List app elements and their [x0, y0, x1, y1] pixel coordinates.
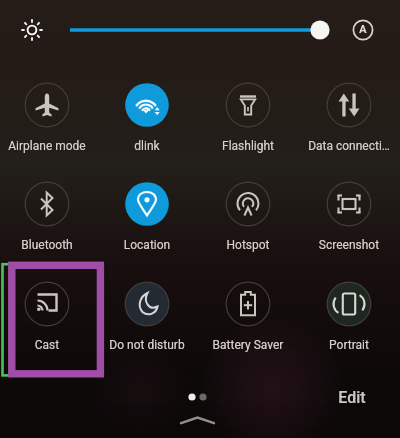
button[interactable]: Flashlight: [198, 79, 298, 161]
staticText: Edit: [322, 388, 382, 407]
button[interactable]: Screenshot: [299, 178, 399, 260]
button[interactable]: Battery Saver: [198, 278, 298, 360]
staticText: Portrait: [299, 338, 399, 352]
button[interactable]: Airplane mode: [0, 79, 97, 161]
button[interactable]: Hotspot: [198, 178, 298, 260]
button[interactable]: Page indicator: [182, 388, 214, 406]
staticText: Screenshot: [299, 238, 399, 252]
button[interactable]: Auto brightness: [346, 13, 380, 47]
button[interactable]: Brightness slider: [60, 14, 332, 46]
button[interactable]: Edit: [322, 382, 382, 412]
staticText: Flashlight: [198, 139, 298, 153]
staticText: Hotspot: [198, 238, 298, 252]
staticText: Bluetooth: [0, 238, 97, 252]
staticText: A: [346, 23, 380, 36]
staticText: Cast: [0, 338, 97, 352]
button[interactable]: Collapse: [176, 410, 220, 432]
button[interactable]: Portrait: [299, 278, 399, 360]
button[interactable]: Location: [97, 178, 197, 260]
button[interactable]: Cast: [0, 278, 97, 360]
staticText: Do not disturb: [97, 338, 197, 352]
staticText: Location: [97, 238, 197, 252]
staticText: Data connecti…: [299, 139, 399, 153]
staticText: Battery Saver: [198, 338, 298, 352]
button[interactable]: dlink: [97, 79, 197, 161]
button[interactable]: Brightness: [14, 12, 50, 48]
button[interactable]: Data connecti…: [299, 79, 399, 161]
staticText: dlink: [97, 139, 197, 153]
button[interactable]: Bluetooth: [0, 178, 97, 260]
staticText: Airplane mode: [0, 139, 97, 153]
button[interactable]: Do not disturb: [97, 278, 197, 360]
